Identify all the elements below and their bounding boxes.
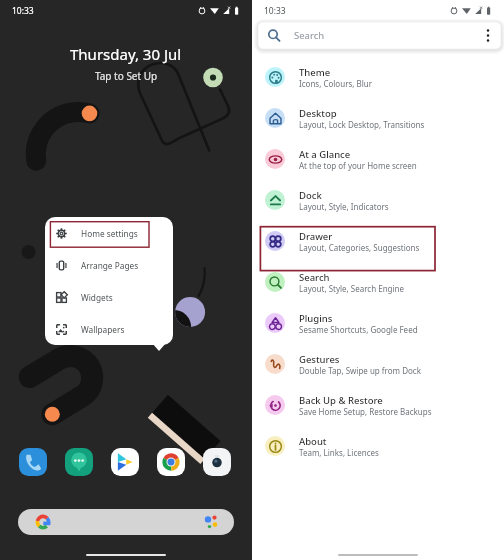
staticText: Dock bbox=[299, 189, 322, 202]
staticText: Plugins bbox=[299, 312, 333, 325]
staticText: Wallpapers bbox=[81, 324, 125, 335]
staticText: 10:33 bbox=[12, 5, 34, 17]
button[interactable]: Desktop bbox=[252, 97, 504, 138]
button[interactable]: Arrange Pages bbox=[45, 249, 173, 281]
button[interactable]: About bbox=[252, 425, 504, 466]
button[interactable]: Home settings bbox=[45, 217, 173, 249]
button[interactable]: Dock bbox=[252, 179, 504, 220]
staticText: At the top of your Home screen bbox=[299, 160, 417, 171]
staticText: Double Tap, Swipe up from Dock bbox=[299, 365, 421, 376]
button[interactable]: Wallpapers bbox=[45, 313, 173, 345]
button[interactable]: Google Search bbox=[18, 509, 234, 535]
button[interactable]: Drawer bbox=[252, 220, 504, 261]
staticText: Sesame Shortcuts, Google Feed bbox=[299, 324, 418, 335]
staticText: Team, Links, Licences bbox=[299, 447, 379, 458]
staticText: Thursday, 30 Jul bbox=[70, 44, 182, 64]
button[interactable]: Theme bbox=[252, 56, 504, 97]
staticText: About bbox=[299, 435, 327, 448]
button[interactable]: Widgets bbox=[45, 281, 173, 313]
staticText: Layout, Style, Indicators bbox=[299, 201, 389, 212]
button[interactable]: Search bbox=[252, 261, 504, 302]
staticText: Tap to Set Up bbox=[95, 69, 158, 83]
button[interactable]: Plugins bbox=[252, 302, 504, 343]
staticText: Back Up & Restore bbox=[299, 394, 383, 407]
staticText: Widgets bbox=[81, 292, 113, 303]
staticText: At a Glance bbox=[299, 148, 351, 161]
staticText: Desktop bbox=[299, 107, 337, 120]
staticText: 10:33 bbox=[264, 5, 286, 17]
button[interactable]: Camera bbox=[203, 448, 231, 476]
staticText: Search bbox=[294, 29, 325, 42]
button[interactable]: At a Glance bbox=[252, 138, 504, 179]
staticText: Theme bbox=[299, 66, 331, 79]
staticText: Layout, Lock Desktop, Transitions bbox=[299, 119, 425, 130]
staticText: Arrange Pages bbox=[81, 260, 139, 271]
staticText: Drawer bbox=[299, 230, 333, 243]
button[interactable]: Gestures bbox=[252, 343, 504, 384]
staticText: Layout, Categories, Suggestions bbox=[299, 242, 420, 253]
button[interactable]: Messages bbox=[65, 448, 93, 476]
staticText: Layout, Style, Search Engine bbox=[299, 283, 405, 294]
staticText: Save Home Setup, Restore Backups bbox=[299, 406, 432, 417]
staticText: Home settings bbox=[81, 228, 138, 239]
button[interactable]: Chrome bbox=[157, 448, 185, 476]
staticText: Search bbox=[299, 271, 330, 284]
staticText: Gestures bbox=[299, 353, 340, 366]
staticText: Icons, Colours, Blur bbox=[299, 78, 373, 89]
button[interactable]: Phone bbox=[19, 448, 47, 476]
button[interactable]: Back Up & Restore bbox=[252, 384, 504, 425]
button[interactable]: Play Store bbox=[111, 448, 139, 476]
button[interactable]: Search bbox=[258, 22, 501, 49]
